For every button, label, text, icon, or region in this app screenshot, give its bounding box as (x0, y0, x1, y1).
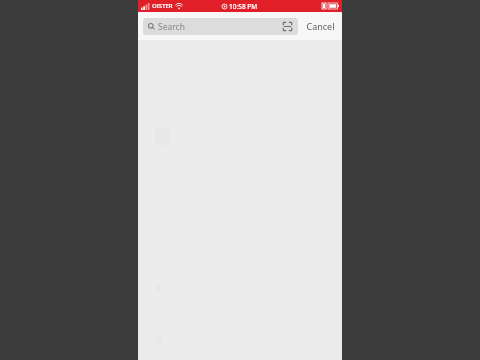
staticText: 10:58 PM (229, 2, 258, 11)
button[interactable]: Search (143, 18, 298, 35)
staticText: Cancel (306, 20, 335, 32)
staticText: OISTER (152, 2, 173, 10)
button[interactable]: Cancel (304, 17, 337, 35)
staticText: Search (158, 21, 185, 33)
button[interactable]: Scan barcode (282, 21, 293, 32)
